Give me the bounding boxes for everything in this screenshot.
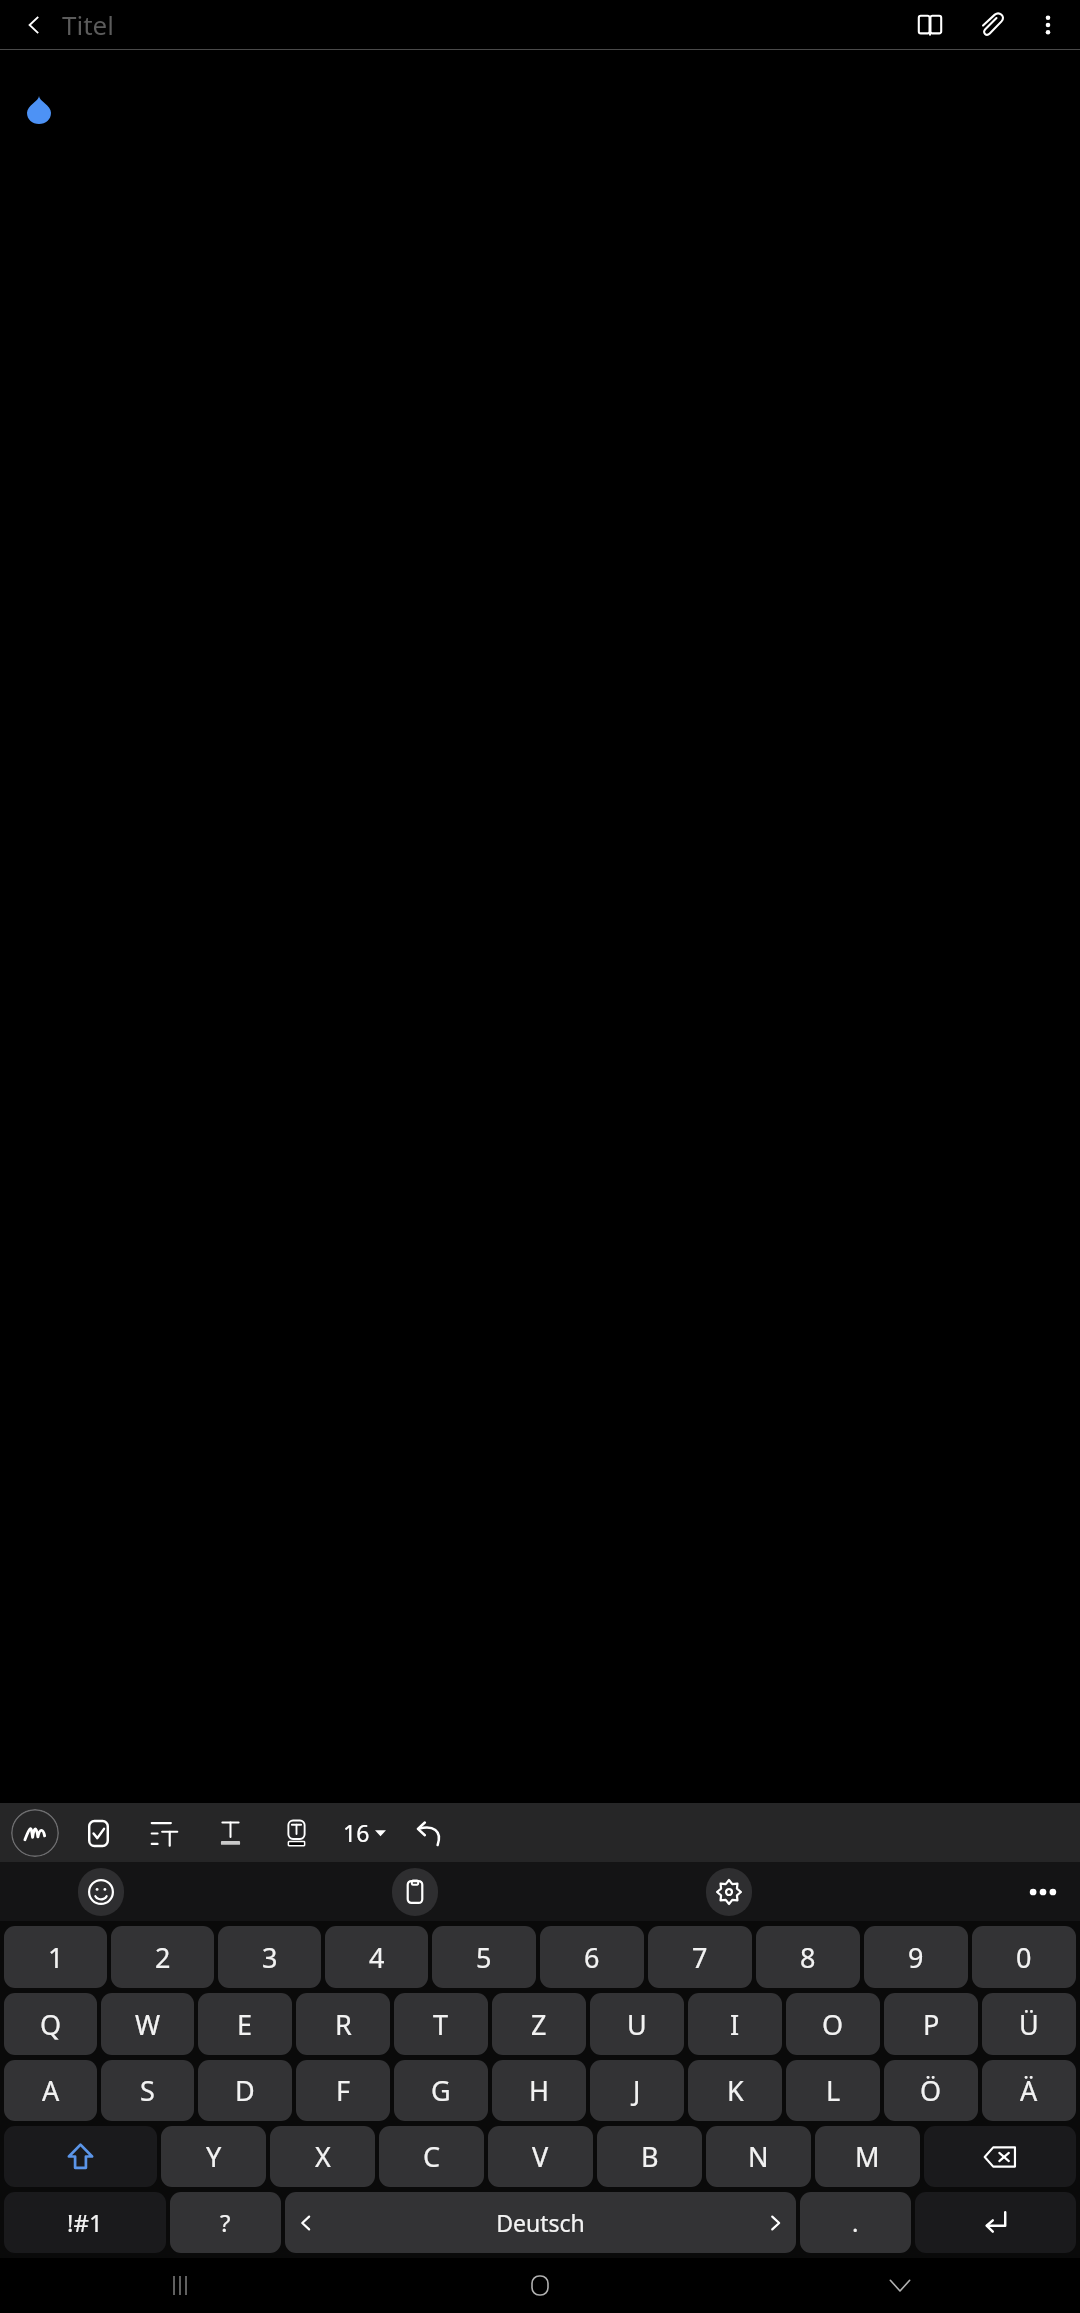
staticText: D: [235, 2072, 255, 2109]
button[interactable]: P: [884, 1993, 978, 2055]
button[interactable]: 16: [337, 1813, 392, 1852]
staticText: F: [336, 2072, 351, 2109]
button[interactable]: O: [786, 1993, 880, 2055]
button[interactable]: 1: [4, 1926, 107, 1988]
button[interactable]: W: [101, 1993, 194, 2055]
button[interactable]: C: [379, 2126, 484, 2187]
staticText: O: [822, 2006, 844, 2043]
staticText: Y: [206, 2138, 222, 2175]
button[interactable]: Space: [285, 2192, 796, 2253]
button[interactable]: 3: [218, 1926, 321, 1988]
staticText: Titel: [62, 7, 114, 42]
staticText: U: [627, 2006, 647, 2043]
button[interactable]: Z: [492, 1993, 586, 2055]
button[interactable]: R: [296, 1993, 390, 2055]
button[interactable]: G: [394, 2060, 488, 2121]
staticText: 1: [48, 1939, 64, 1976]
button[interactable]: Checklist: [75, 1810, 121, 1856]
button[interactable]: Recent apps: [151, 2258, 209, 2313]
staticText: Deutsch: [312, 2207, 769, 2238]
staticText: ?: [220, 2206, 231, 2239]
button[interactable]: Back: [8, 0, 60, 49]
button[interactable]: Keyboard settings: [706, 1868, 752, 1916]
staticText: 4: [369, 1939, 385, 1976]
button[interactable]: Emoji: [78, 1868, 124, 1916]
staticText: P: [923, 2006, 940, 2043]
button[interactable]: 9: [864, 1926, 968, 1988]
button[interactable]: Text color: [207, 1810, 253, 1856]
staticText: !#1: [67, 2206, 103, 2239]
staticText: 6: [584, 1939, 600, 1976]
staticText: 16: [343, 1817, 370, 1848]
button[interactable]: 6: [540, 1926, 644, 1988]
button[interactable]: More: [1020, 1869, 1066, 1915]
button[interactable]: 5: [432, 1926, 536, 1988]
staticText: Ü: [1019, 2006, 1039, 2043]
button[interactable]: Enter: [915, 2192, 1076, 2253]
button[interactable]: Highlight: [273, 1810, 319, 1856]
staticText: N: [748, 2138, 769, 2175]
staticText: 5: [476, 1939, 492, 1976]
button[interactable]: M: [815, 2126, 920, 2187]
staticText: J: [633, 2072, 641, 2109]
button[interactable]: V: [488, 2126, 593, 2187]
button[interactable]: 2: [111, 1926, 214, 1988]
staticText: E: [237, 2006, 253, 2043]
button[interactable]: Shift: [4, 2126, 157, 2187]
button[interactable]: 4: [325, 1926, 428, 1988]
button[interactable]: K: [688, 2060, 782, 2121]
button[interactable]: !#1: [4, 2192, 166, 2253]
staticText: Ö: [920, 2072, 942, 2109]
staticText: .: [852, 2206, 859, 2239]
button[interactable]: T: [394, 1993, 488, 2055]
button[interactable]: Ü: [982, 1993, 1076, 2055]
staticText: X: [315, 2138, 331, 2175]
staticText: 9: [908, 1939, 924, 1976]
button[interactable]: 0: [972, 1926, 1076, 1988]
button[interactable]: Q: [4, 1993, 97, 2055]
button[interactable]: E: [198, 1993, 292, 2055]
button[interactable]: More options: [1024, 1, 1072, 49]
button[interactable]: ?: [170, 2192, 281, 2253]
button[interactable]: Backspace: [924, 2126, 1076, 2187]
button[interactable]: Paragraph style: [141, 1810, 187, 1856]
button[interactable]: Y: [161, 2126, 266, 2187]
button[interactable]: .: [800, 2192, 911, 2253]
button[interactable]: X: [270, 2126, 375, 2187]
staticText: K: [727, 2072, 744, 2109]
staticText: 8: [800, 1939, 816, 1976]
button[interactable]: S: [101, 2060, 194, 2121]
button[interactable]: U: [590, 1993, 684, 2055]
button[interactable]: F: [296, 2060, 390, 2121]
button[interactable]: L: [786, 2060, 880, 2121]
button[interactable]: Undo: [406, 1810, 452, 1856]
button[interactable]: Ä: [982, 2060, 1076, 2121]
button[interactable]: Reading view: [906, 1, 954, 49]
button[interactable]: B: [597, 2126, 702, 2187]
staticText: 7: [692, 1939, 708, 1976]
staticText: 2: [155, 1939, 171, 1976]
button[interactable]: Handwriting: [11, 1809, 59, 1857]
staticText: G: [431, 2072, 451, 2109]
staticText: R: [335, 2006, 352, 2043]
staticText: Z: [531, 2006, 547, 2043]
button[interactable]: J: [590, 2060, 684, 2121]
button[interactable]: Home: [511, 2258, 569, 2313]
staticText: 0: [1016, 1939, 1032, 1976]
button[interactable]: A: [4, 2060, 97, 2121]
button[interactable]: Attach: [968, 1, 1016, 49]
button[interactable]: I: [688, 1993, 782, 2055]
button[interactable]: 7: [648, 1926, 752, 1988]
staticText: H: [529, 2072, 550, 2109]
staticText: 3: [262, 1939, 278, 1976]
button[interactable]: 8: [756, 1926, 860, 1988]
staticText: S: [140, 2072, 155, 2109]
button[interactable]: Hide keyboard: [871, 2258, 929, 2313]
button[interactable]: H: [492, 2060, 586, 2121]
button[interactable]: Ö: [884, 2060, 978, 2121]
staticText: I: [730, 2006, 740, 2043]
staticText: W: [135, 2006, 161, 2043]
button[interactable]: D: [198, 2060, 292, 2121]
button[interactable]: Clipboard: [392, 1868, 438, 1916]
button[interactable]: N: [706, 2126, 811, 2187]
